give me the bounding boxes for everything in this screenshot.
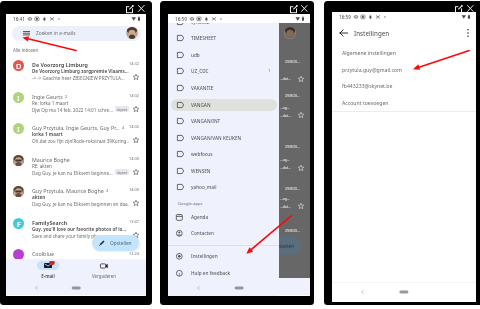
button[interactable]: Vergaderen — [82, 259, 126, 279]
other: Open navigation drawer — [23, 31, 30, 35]
staticText: UZ_CDC — [191, 68, 209, 74]
staticText: Guy Przytula, Ingie Geurts, Guy Pr… — [32, 124, 120, 131]
button[interactable]: Open in new window — [126, 5, 134, 13]
staticText: Re: lorka 1 maart — [32, 100, 129, 106]
staticText: 14:32 — [116, 61, 139, 66]
staticText: 2 — [106, 188, 109, 193]
staticText: Instellingen — [191, 253, 218, 259]
staticText: 29/8/20… — [285, 186, 300, 191]
button[interactable]: przytula.guy@gmail.com — [332, 61, 476, 78]
staticText: Zoeken in e-mails — [36, 30, 76, 37]
button[interactable]: webfocus — [168, 146, 279, 162]
staticText: Algemene instellingen — [342, 49, 396, 56]
button[interactable]: UZ_CDC — [168, 63, 279, 79]
button[interactable]: Hulp en feedback — [168, 265, 279, 281]
staticText: De Voorzorg Limburg — [32, 61, 88, 68]
button[interactable]: I — [6, 115, 146, 147]
button[interactable]: VANGAN/VAN KEUKEN — [168, 130, 279, 146]
button[interactable]: fb443233@skynet.be — [332, 77, 476, 94]
staticText: 1 — [268, 68, 271, 73]
button[interactable]: Opstellen — [92, 235, 139, 251]
staticText: syhaoo2 — [191, 22, 210, 25]
staticText: D — [16, 61, 22, 71]
button[interactable]: VANGAN — [168, 97, 279, 113]
staticText: De Voorzorg Limburg zorgpremie Vlaams… — [32, 68, 129, 74]
staticText: 14:00 — [116, 156, 139, 161]
staticText: fb443233@skynet.be — [342, 82, 393, 89]
button[interactable]: Open navigation drawer — [12, 26, 141, 41]
staticText: VANGAN/INT — [191, 118, 221, 124]
staticText: VANGAN — [191, 102, 211, 108]
staticText: …ug… — [280, 196, 290, 201]
staticText: I — [17, 93, 20, 103]
button[interactable]: F — [6, 210, 146, 242]
staticText: 13:47 — [116, 219, 139, 224]
staticText: E-mail — [26, 273, 70, 279]
staticText: …dat… — [280, 76, 291, 81]
button[interactable]: TIMESHEET — [168, 30, 279, 46]
staticText: Hulp en feedback — [191, 270, 231, 276]
staticText: Maurice Boghe — [32, 156, 70, 163]
staticText: 29/8/20… — [285, 59, 300, 64]
staticText: VAKANTIE — [191, 85, 214, 91]
staticText: Google-apps — [178, 201, 203, 207]
button[interactable]: Close — [467, 5, 474, 12]
staticText: Account toevoegen — [342, 99, 389, 106]
staticText: Djw Op ma 14 feb. 2022 14:01 schre… — [32, 107, 114, 113]
button[interactable]: Instellingen — [168, 248, 279, 264]
staticText: Coolblue — [32, 250, 55, 257]
staticText: 29/8/20… — [285, 144, 300, 149]
button[interactable]: Account toevoegen — [332, 94, 476, 111]
staticText: udb — [191, 52, 200, 58]
button[interactable]: Account — [126, 27, 138, 39]
staticText: Instellingen — [354, 29, 390, 37]
staticText: stellen — [279, 243, 295, 250]
staticText: akten — [32, 194, 129, 200]
staticText: skynet — [117, 170, 128, 174]
button[interactable]: VANGAN/INT — [168, 113, 279, 129]
button[interactable]: udb — [168, 47, 279, 63]
staticText: VANGAN/VAN KEUKEN — [191, 135, 242, 141]
button[interactable]: Guy Przytula, Maurice Boghe — [6, 178, 146, 210]
staticText: Agenda — [191, 214, 209, 220]
staticText: przytula.guy@gmail.com — [342, 66, 402, 73]
staticText: Guy Przytula, Maurice Boghe — [32, 187, 104, 194]
staticText: 29/8/20… — [285, 93, 300, 98]
staticText: Alle inboxen — [13, 47, 39, 53]
staticText: TIMESHEET — [191, 35, 217, 41]
staticText: 2 — [65, 94, 68, 99]
button[interactable]: VAKANTIE — [168, 80, 279, 96]
staticText: Ingie Geurts — [32, 93, 63, 100]
button[interactable]: I — [6, 84, 146, 116]
staticText: 14:00 — [116, 187, 139, 192]
button[interactable]: Agenda — [168, 209, 279, 225]
button[interactable]: Contacten — [168, 225, 279, 241]
staticText: 16:41 — [13, 16, 25, 22]
button[interactable]: Close — [301, 5, 308, 12]
button[interactable]: Algemene instellingen — [332, 44, 476, 61]
staticText: Oh,dat zou fijn zijn!Rode-rokstraat 39Ku… — [32, 138, 129, 144]
staticText: I — [17, 124, 20, 134]
button[interactable]: E-mail — [26, 259, 70, 279]
button[interactable]: Close — [138, 5, 145, 12]
staticText: skynet — [117, 107, 128, 111]
staticText: 14:02 — [116, 124, 139, 129]
staticText: Dag Guy, je kan nu Eliksem beginnen en d… — [32, 201, 129, 207]
staticText: WENSEN — [191, 168, 211, 174]
button[interactable]: Back — [338, 27, 350, 39]
staticText: F — [17, 219, 21, 229]
staticText: RE: akten — [32, 163, 129, 169]
button[interactable]: Open in new window — [455, 5, 463, 13]
button[interactable]: Open in new window — [290, 5, 298, 13]
button[interactable]: Maurice Boghe — [6, 147, 146, 179]
staticText: …dat… — [280, 165, 291, 170]
staticText: Guy, you'll love our favorite photos of … — [32, 226, 129, 232]
button[interactable]: D — [6, 52, 146, 84]
button[interactable]: More options — [462, 27, 474, 39]
button[interactable]: WENSEN — [168, 163, 279, 179]
staticText: lorka 1 maart — [32, 131, 129, 137]
staticText: Vergaderen — [82, 273, 126, 279]
staticText: 29/8/20… — [285, 228, 300, 233]
button[interactable]: yahoo_mail — [168, 179, 279, 195]
staticText: 14:02 — [116, 93, 139, 98]
